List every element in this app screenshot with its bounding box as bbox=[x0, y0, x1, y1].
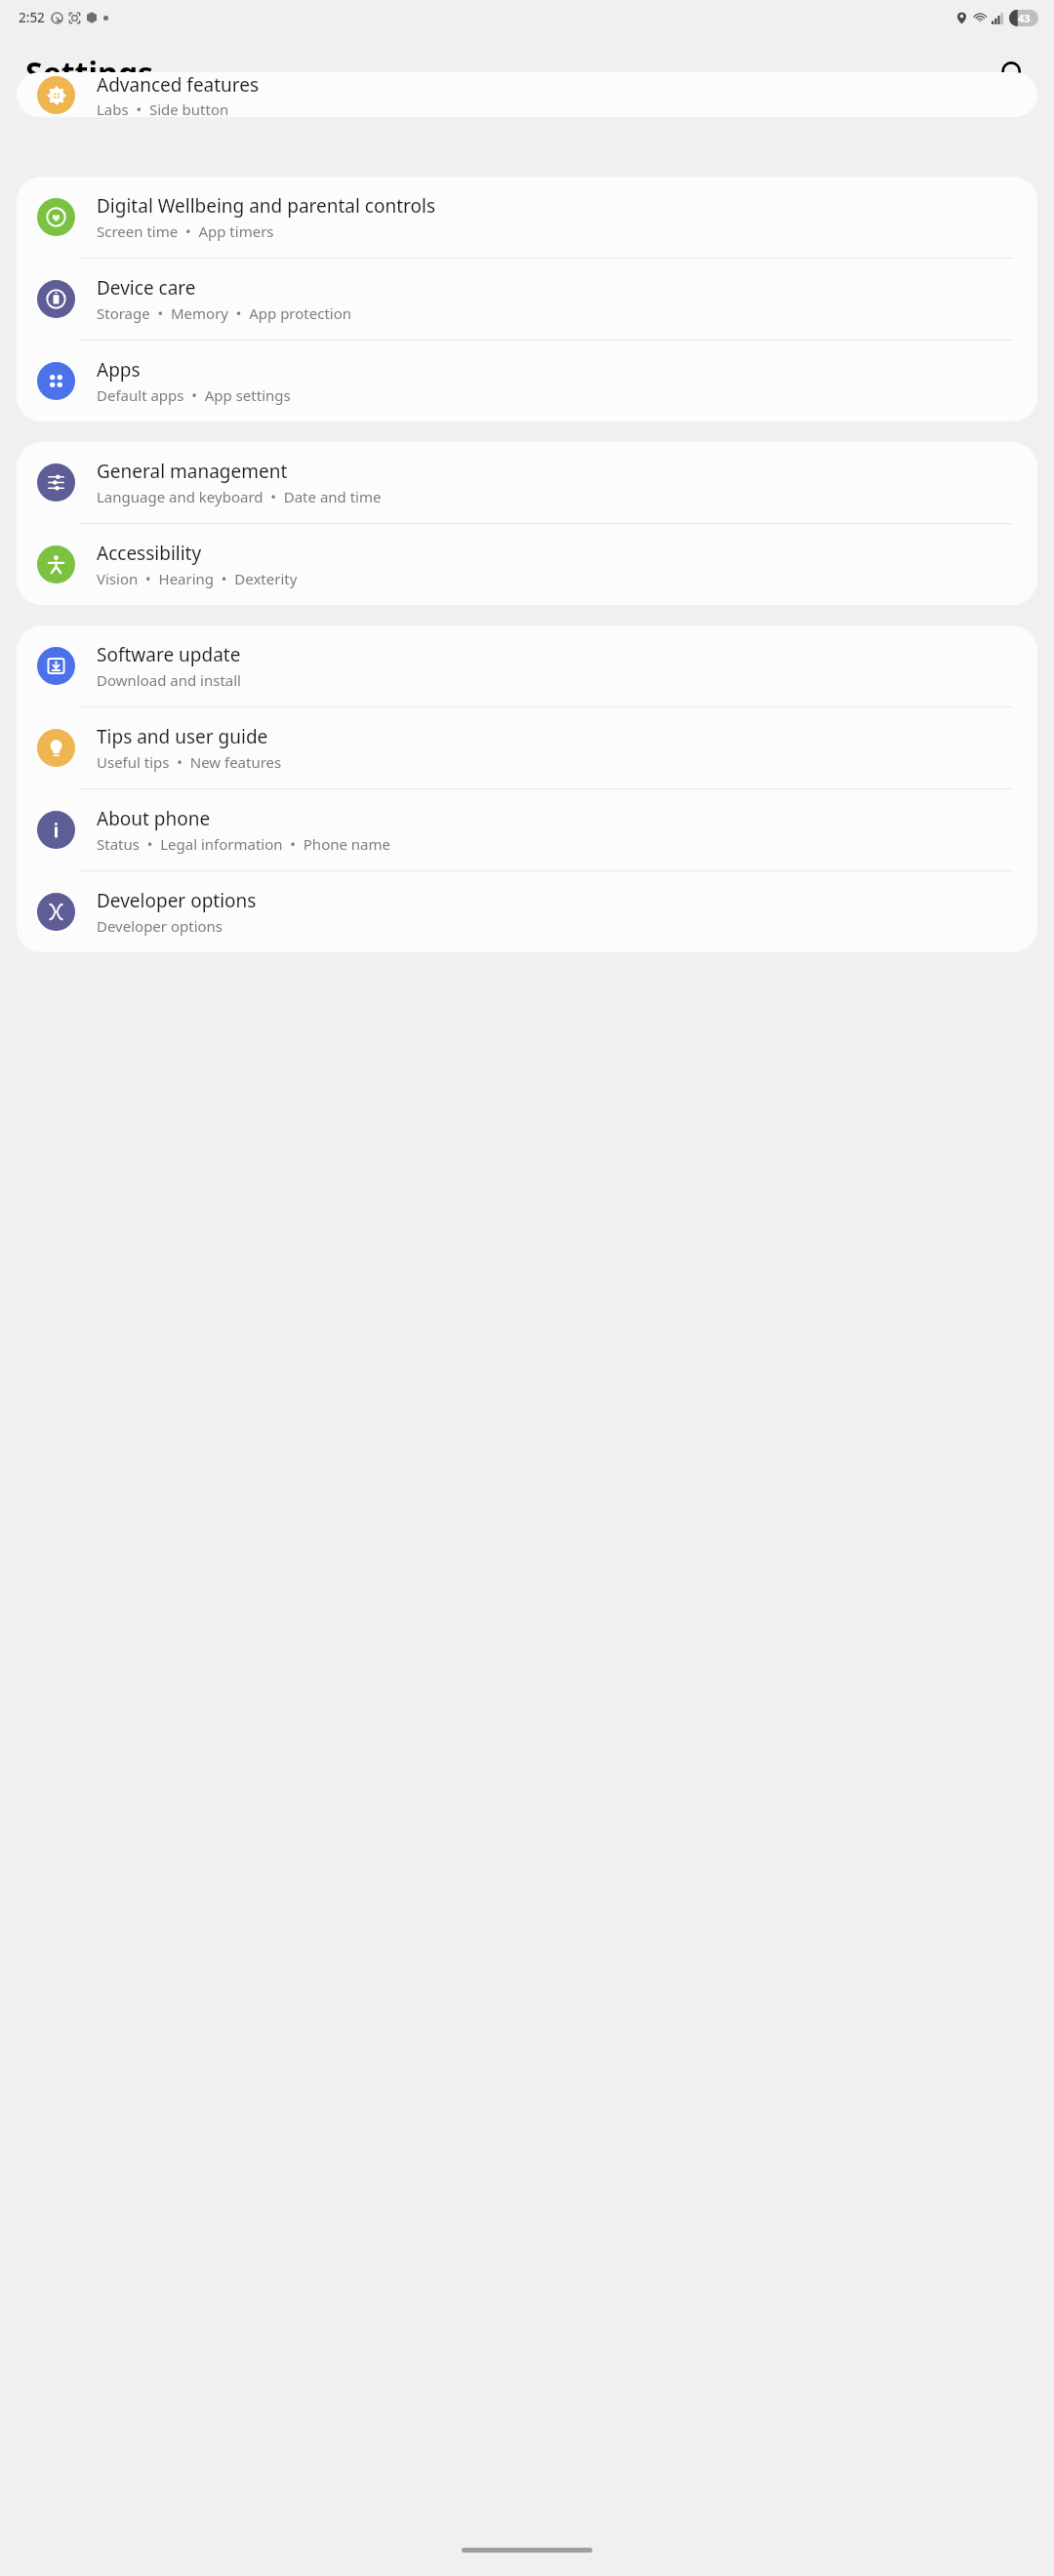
button[interactable]: Device care bbox=[17, 259, 1037, 340]
staticText: 43 bbox=[1018, 11, 1031, 25]
button[interactable]: Tips and user guide bbox=[17, 707, 1037, 788]
staticText: Labs • Side button bbox=[97, 100, 229, 117]
staticText: Screen time • App timers bbox=[97, 221, 274, 241]
staticText: About phone bbox=[97, 806, 211, 831]
staticText: Developer options bbox=[97, 888, 257, 913]
staticText: Digital Wellbeing and parental controls bbox=[97, 193, 436, 219]
staticText: Apps bbox=[97, 357, 141, 382]
staticText: Default apps • App settings bbox=[97, 385, 291, 405]
staticText: Device care bbox=[97, 275, 196, 301]
staticText: Download and install bbox=[97, 670, 241, 690]
staticText: Language and keyboard • Date and time bbox=[97, 487, 382, 506]
staticText: Software update bbox=[97, 642, 241, 667]
staticText: General management bbox=[97, 459, 288, 484]
staticText: Useful tips • New features bbox=[97, 752, 282, 772]
staticText: 2:52 bbox=[19, 9, 45, 26]
staticText: Advanced features bbox=[97, 72, 260, 98]
button[interactable]: About phone bbox=[17, 789, 1037, 870]
button[interactable]: Digital Wellbeing and parental controls bbox=[17, 177, 1037, 258]
staticText: Developer options bbox=[97, 916, 223, 936]
staticText: Tips and user guide bbox=[97, 724, 268, 749]
button[interactable]: Accessibility bbox=[17, 524, 1037, 605]
button[interactable]: Developer options bbox=[17, 871, 1037, 952]
button[interactable]: Software update bbox=[17, 625, 1037, 706]
button[interactable]: Search bbox=[990, 50, 1036, 97]
staticText: Settings bbox=[25, 52, 154, 95]
staticText: Status • Legal information • Phone name bbox=[97, 834, 391, 854]
staticText: Storage • Memory • App protection bbox=[97, 303, 352, 323]
button[interactable]: Advanced features bbox=[17, 72, 1037, 117]
staticText: Vision • Hearing • Dexterity bbox=[97, 569, 298, 588]
staticText: Accessibility bbox=[97, 541, 202, 566]
button[interactable]: Apps bbox=[17, 341, 1037, 422]
button[interactable]: General management bbox=[17, 442, 1037, 523]
